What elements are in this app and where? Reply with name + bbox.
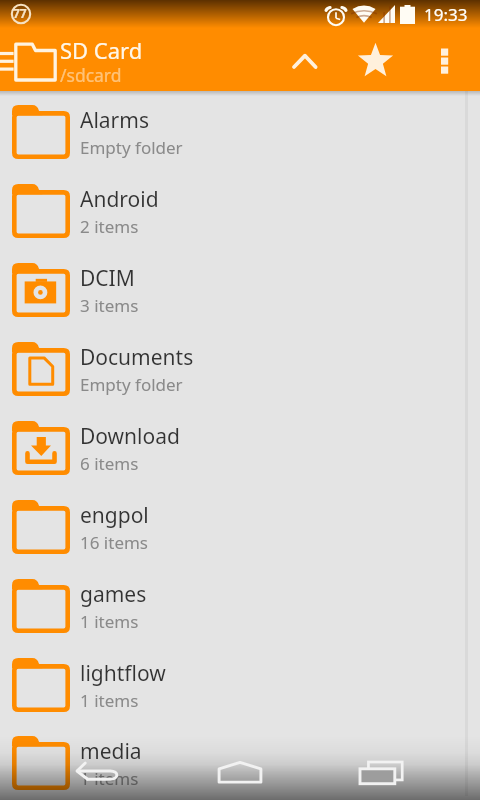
- staticText: Alarms: [80, 106, 149, 135]
- button[interactable]: More options: [434, 28, 480, 91]
- staticText: Download: [80, 422, 180, 451]
- staticText: Empty folder: [80, 373, 183, 396]
- staticText: 1 items: [80, 610, 139, 633]
- staticText: 19:33: [424, 3, 468, 26]
- staticText: Android: [80, 185, 159, 214]
- staticText: media: [80, 737, 142, 766]
- button[interactable]: engpol: [0, 487, 480, 566]
- staticText: 3 items: [80, 294, 139, 317]
- staticText: 77: [13, 5, 27, 21]
- button[interactable]: games: [0, 566, 480, 645]
- staticText: 2 items: [80, 215, 139, 238]
- staticText: engpol: [80, 501, 149, 530]
- button[interactable]: Open navigation drawer: [0, 28, 58, 91]
- staticText: /sdcard: [60, 63, 122, 87]
- staticText: Empty folder: [80, 136, 183, 159]
- staticText: 16 items: [80, 531, 149, 554]
- button[interactable]: Recent apps: [341, 748, 421, 800]
- button[interactable]: Up one level: [276, 28, 334, 91]
- button[interactable]: Favorites: [347, 28, 403, 91]
- staticText: Documents: [80, 343, 194, 372]
- button[interactable]: Documents: [0, 329, 480, 408]
- button[interactable]: Android: [0, 171, 480, 250]
- staticText: DCIM: [80, 264, 135, 293]
- button[interactable]: Download: [0, 408, 480, 487]
- staticText: 1 items: [80, 767, 139, 790]
- button[interactable]: DCIM: [0, 250, 480, 329]
- staticText: SD Card: [60, 35, 143, 65]
- button[interactable]: Alarms: [0, 92, 480, 171]
- button[interactable]: media: [0, 724, 480, 800]
- button[interactable]: Back: [58, 748, 138, 800]
- staticText: 1 items: [80, 689, 139, 712]
- button[interactable]: Home: [200, 748, 280, 800]
- staticText: 6 items: [80, 452, 139, 475]
- staticText: lightflow: [80, 659, 166, 688]
- button[interactable]: lightflow: [0, 645, 480, 724]
- staticText: games: [80, 580, 147, 609]
